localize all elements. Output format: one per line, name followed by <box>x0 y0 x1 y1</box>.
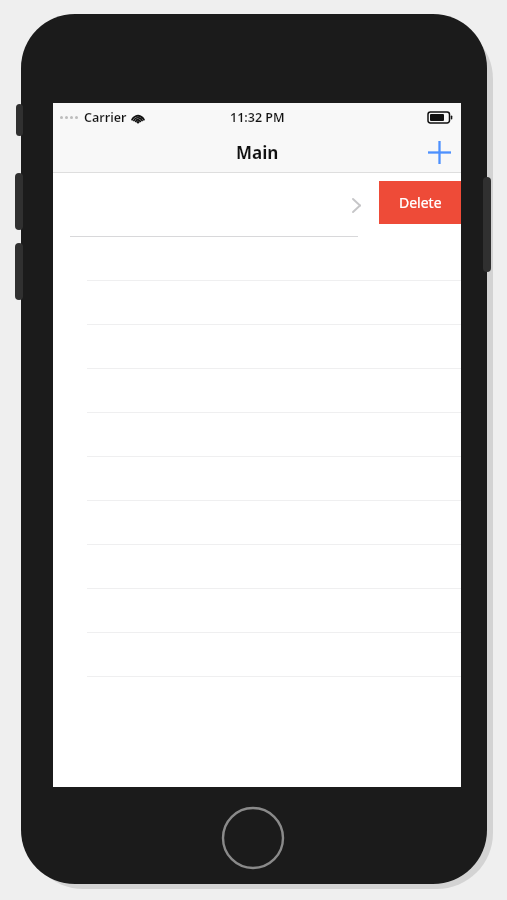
button[interactable]: Add <box>417 132 461 173</box>
staticText: Delete <box>399 193 442 212</box>
staticText: 11:32 PM <box>230 109 285 126</box>
button[interactable] <box>53 173 461 237</box>
button[interactable]: Home <box>221 806 285 870</box>
staticText: Main <box>236 141 279 164</box>
button[interactable]: Delete <box>379 181 461 224</box>
staticText: Carrier <box>84 109 127 126</box>
